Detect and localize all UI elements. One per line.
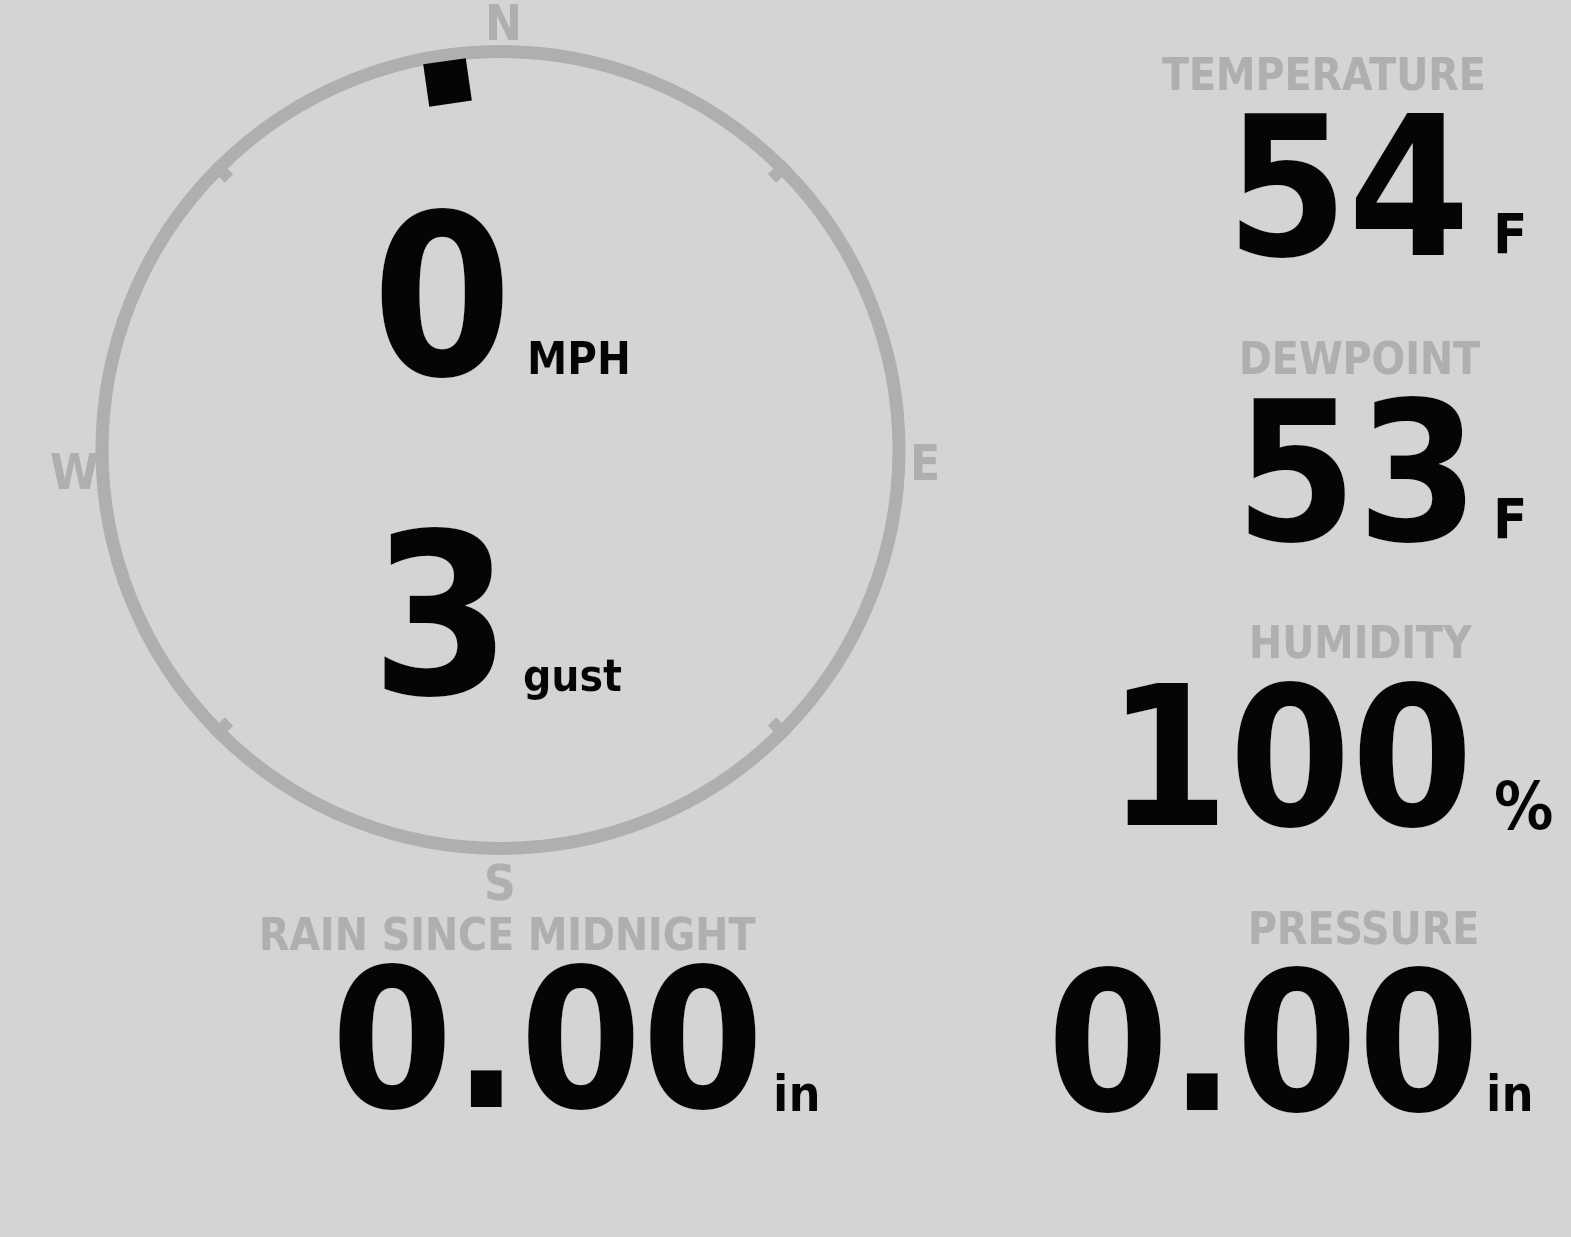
staticText: PRESSURE	[1248, 903, 1480, 954]
staticText: gust	[523, 650, 623, 701]
staticText: W	[50, 444, 99, 501]
staticText: 53	[1235, 359, 1480, 586]
staticText: S	[484, 855, 516, 912]
staticText: 100	[1107, 644, 1474, 871]
staticText: 54	[1226, 74, 1471, 301]
staticText: 0.00	[1047, 929, 1480, 1156]
staticText: in	[1486, 1065, 1534, 1123]
staticText: DEWPOINT	[1239, 333, 1481, 384]
staticText: F	[1493, 486, 1528, 551]
staticText: MPH	[527, 332, 631, 384]
other: Wind direction compass	[0, 0, 1571, 1237]
staticText: TEMPERATURE	[1162, 49, 1486, 100]
staticText: 3	[371, 486, 512, 747]
staticText: RAIN SINCE MIDNIGHT	[259, 909, 756, 960]
staticText: HUMIDITY	[1249, 617, 1472, 668]
staticText: %	[1494, 768, 1554, 845]
staticText: N	[485, 0, 522, 52]
staticText: in	[773, 1065, 821, 1123]
staticText: 0	[372, 167, 513, 428]
staticText: E	[910, 435, 941, 492]
staticText: 0.00	[331, 926, 764, 1153]
staticText: F	[1493, 201, 1528, 266]
